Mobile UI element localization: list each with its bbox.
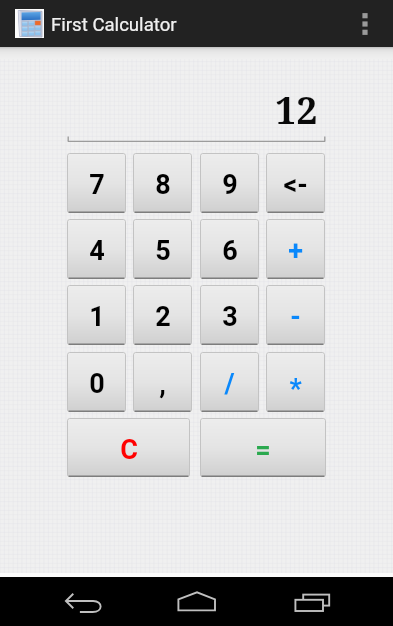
staticText: 4 <box>89 235 105 267</box>
staticText: 0 <box>89 368 105 400</box>
staticText: C <box>120 434 138 466</box>
staticText: 8 <box>155 169 171 201</box>
button[interactable]: + <box>266 219 325 279</box>
staticText: / <box>224 368 235 400</box>
button[interactable]: More options <box>337 0 393 47</box>
button[interactable]: 8 <box>133 153 192 213</box>
staticText: + <box>288 235 303 267</box>
staticText: 3 <box>222 301 238 333</box>
staticText: <- <box>283 169 308 201</box>
staticText: * <box>289 373 302 405</box>
staticText: 2 <box>155 301 171 333</box>
staticText: 6 <box>222 235 238 267</box>
button[interactable]: * <box>266 352 325 412</box>
staticText: 9 <box>222 169 238 201</box>
staticText: - <box>290 301 301 333</box>
staticText: = <box>255 434 271 466</box>
button[interactable]: Recent apps <box>279 577 346 626</box>
button[interactable]: - <box>266 285 325 345</box>
staticText: 5 <box>155 235 171 267</box>
button[interactable]: 3 <box>200 285 259 345</box>
button[interactable]: 9 <box>200 153 259 213</box>
button[interactable]: 6 <box>200 219 259 279</box>
button[interactable]: , <box>133 352 192 412</box>
button[interactable]: 7 <box>67 153 126 213</box>
staticText: 1 <box>89 301 105 333</box>
button[interactable]: Back <box>48 577 114 626</box>
button[interactable]: C <box>67 418 190 477</box>
staticText: , <box>159 368 166 400</box>
button[interactable]: Home <box>163 577 230 626</box>
button[interactable]: 2 <box>133 285 192 345</box>
staticText: First Calculator <box>51 14 177 36</box>
button[interactable]: / <box>200 352 259 412</box>
staticText: 12 <box>275 84 318 129</box>
button[interactable]: = <box>200 418 326 477</box>
button[interactable]: 5 <box>133 219 192 279</box>
button[interactable]: <- <box>266 153 325 213</box>
button[interactable]: 4 <box>67 219 126 279</box>
button[interactable]: 0 <box>67 352 126 412</box>
staticText: 7 <box>89 169 105 201</box>
button[interactable]: 1 <box>67 285 126 345</box>
